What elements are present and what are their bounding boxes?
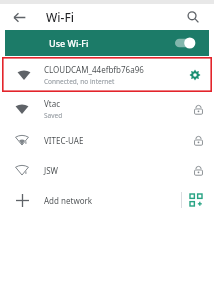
staticText: VITEC-UAE	[44, 135, 84, 146]
button[interactable]: Network settings	[180, 56, 210, 93]
button[interactable]: Search	[182, 6, 204, 28]
staticText: Add network	[44, 195, 93, 206]
button[interactable]: Vtac	[0, 93, 214, 125]
button[interactable]: Scan QR code	[182, 185, 210, 215]
staticText: Use Wi-Fi	[49, 37, 89, 49]
button[interactable]: CLOUDCAM_44efbfb76a96	[4, 56, 210, 93]
button[interactable]: JSW	[0, 155, 214, 185]
staticText: JSW	[44, 165, 59, 176]
button[interactable]: VITEC-UAE	[0, 125, 214, 155]
staticText: Vtac	[44, 98, 61, 109]
button[interactable]: Back	[8, 6, 30, 28]
button[interactable]: Add network	[0, 185, 214, 215]
staticText: Saved	[44, 111, 63, 120]
button[interactable]: Use Wi-Fi	[5, 30, 209, 56]
staticText: CLOUDCAM_44efbfb76a96	[44, 64, 144, 75]
staticText: Connected, no internet	[44, 77, 115, 86]
staticText: Wi-Fi	[46, 9, 74, 25]
